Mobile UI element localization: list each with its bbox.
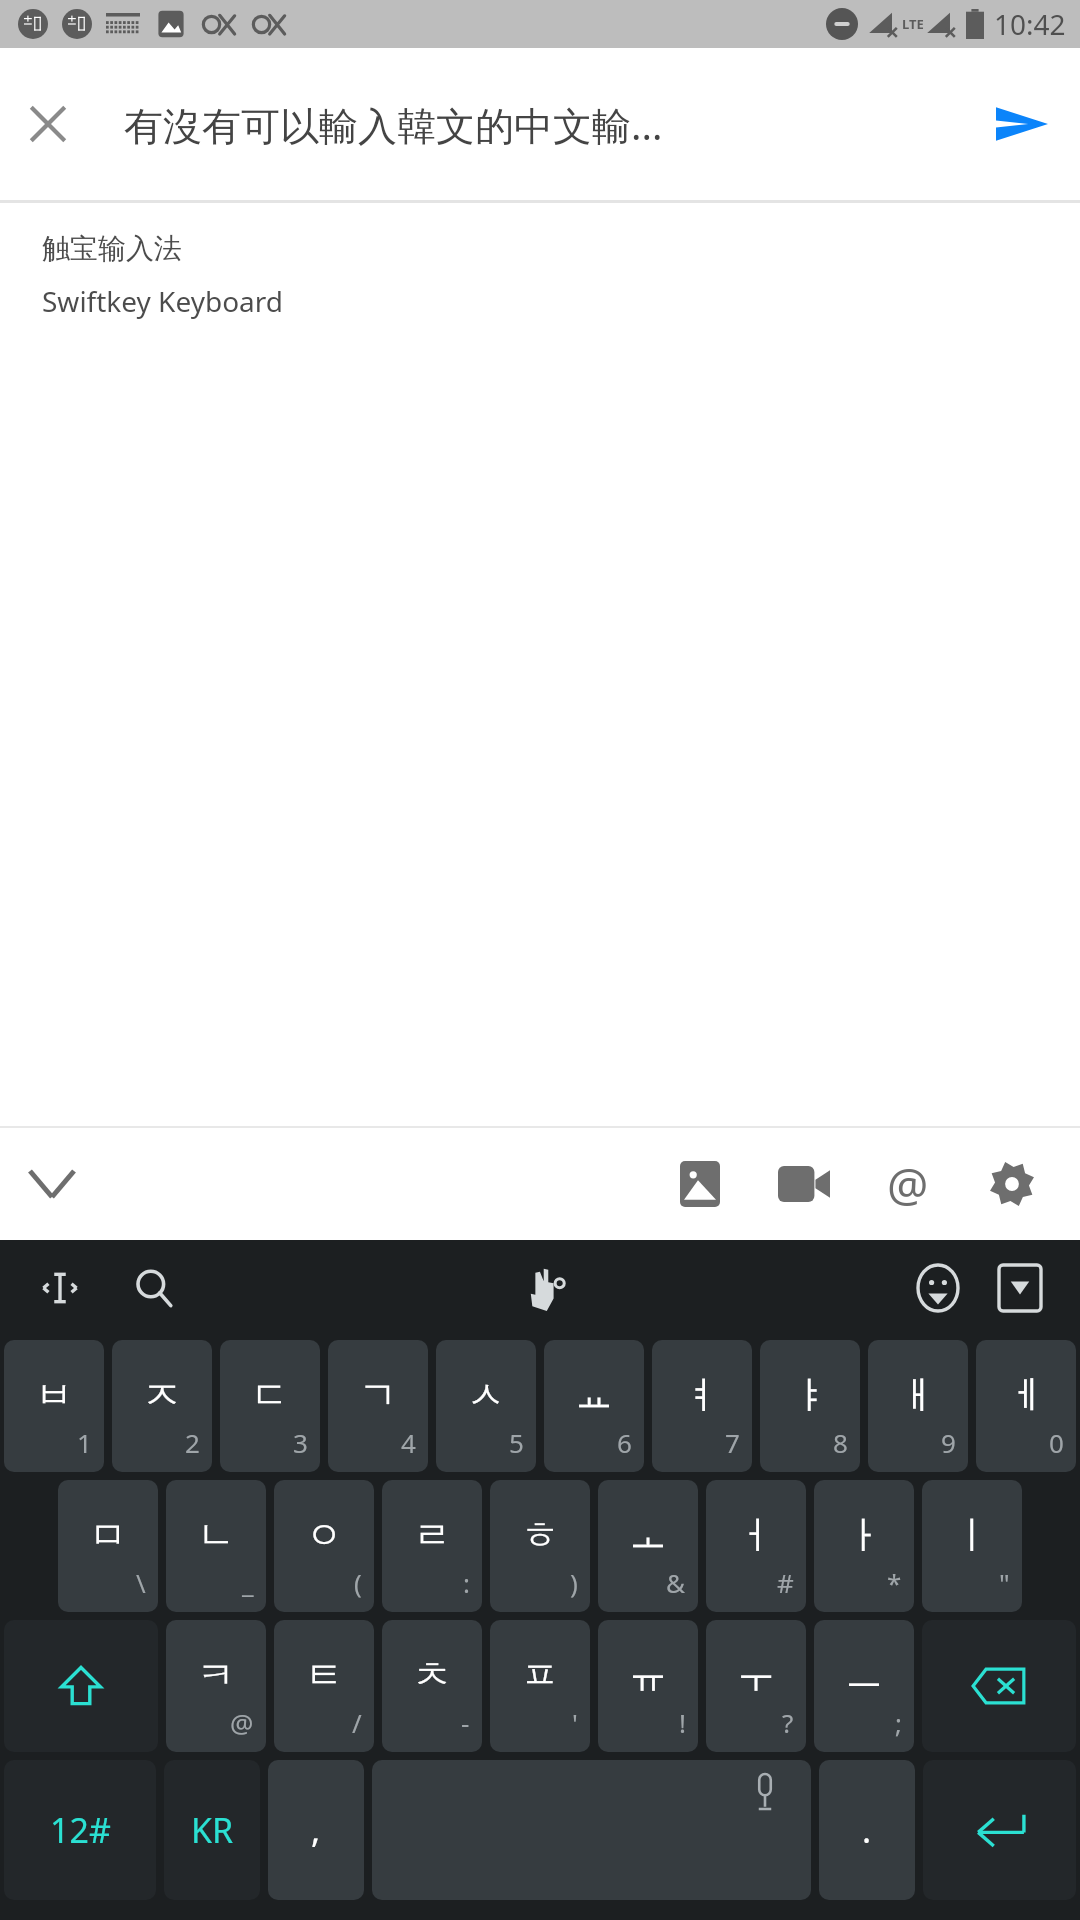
button[interactable]: ㅍ xyxy=(490,1620,590,1752)
staticText: . xyxy=(862,1807,872,1853)
staticText: : xyxy=(463,1565,470,1600)
staticText: ) xyxy=(570,1565,578,1600)
staticText: ; xyxy=(895,1705,902,1740)
button[interactable]: Settings xyxy=(960,1132,1064,1236)
staticText: @ xyxy=(230,1705,254,1740)
button[interactable]: Emoji xyxy=(900,1250,976,1326)
button[interactable]: Enter xyxy=(923,1760,1076,1900)
staticText: _ xyxy=(242,1565,254,1600)
staticText: ㅁ xyxy=(89,1511,127,1559)
button[interactable]: 12# xyxy=(4,1760,156,1900)
button[interactable]: Close xyxy=(0,76,96,172)
button[interactable]: . xyxy=(819,1760,915,1900)
staticText: @ xyxy=(887,1153,929,1216)
staticText: 1 xyxy=(77,1425,92,1460)
button[interactable]: Insert video xyxy=(752,1132,856,1236)
button[interactable]: ㅇ xyxy=(274,1480,374,1612)
staticText: 6 xyxy=(617,1425,632,1460)
staticText: \ xyxy=(136,1565,146,1600)
button[interactable]: Send xyxy=(974,76,1070,172)
button[interactable]: Collapse xyxy=(0,1132,104,1236)
staticText: ㅡ xyxy=(845,1651,883,1699)
button[interactable]: ㄷ xyxy=(220,1340,320,1472)
staticText: 触宝输入法 xyxy=(42,231,182,266)
button[interactable]: ㅠ xyxy=(598,1620,698,1752)
staticText: " xyxy=(999,1565,1010,1600)
staticText: / xyxy=(352,1705,362,1740)
staticText: ㅛ xyxy=(575,1371,613,1419)
staticText: * xyxy=(887,1565,902,1600)
staticText: Swiftkey Keyboard xyxy=(42,282,284,320)
staticText: ㅠ xyxy=(629,1651,667,1699)
button[interactable]: ㅜ xyxy=(706,1620,806,1752)
button[interactable]: Mention xyxy=(856,1132,960,1236)
button[interactable]: ㅗ xyxy=(598,1480,698,1612)
button[interactable]: ㄱ xyxy=(328,1340,428,1472)
staticText: ㅇ xyxy=(305,1511,343,1559)
staticText: 12# xyxy=(50,1807,111,1853)
button[interactable]: , xyxy=(268,1760,364,1900)
staticText: ㄴ xyxy=(197,1511,235,1559)
staticText: ㅅ xyxy=(467,1371,505,1419)
staticText: - xyxy=(461,1705,470,1740)
staticText: , xyxy=(311,1807,321,1853)
staticText: ㅣ xyxy=(953,1511,991,1559)
button[interactable]: Backspace xyxy=(922,1620,1076,1752)
button[interactable]: Search xyxy=(116,1250,192,1326)
staticText: LTE xyxy=(902,15,924,33)
staticText: ㅓ xyxy=(737,1511,775,1559)
button[interactable]: Space xyxy=(372,1760,811,1900)
button[interactable]: ㄴ xyxy=(166,1480,266,1612)
staticText: KR xyxy=(191,1807,234,1853)
staticText: ( xyxy=(354,1565,362,1600)
button[interactable]: Handwriting xyxy=(508,1250,584,1326)
staticText: ㄹ xyxy=(413,1511,451,1559)
staticText: 5 xyxy=(509,1425,524,1460)
button[interactable]: ㅔ xyxy=(976,1340,1076,1472)
button[interactable]: ㅊ xyxy=(382,1620,482,1752)
staticText: 3 xyxy=(293,1425,308,1460)
staticText: ㄱ xyxy=(359,1371,397,1419)
staticText: 9 xyxy=(941,1425,956,1460)
staticText: ㅌ xyxy=(305,1651,343,1699)
button[interactable]: ㅐ xyxy=(868,1340,968,1472)
staticText: 0 xyxy=(1049,1425,1064,1460)
staticText: ㄷ xyxy=(251,1371,289,1419)
staticText: ㅕ xyxy=(683,1371,721,1419)
staticText: ㅜ xyxy=(737,1651,775,1699)
staticText: 4 xyxy=(401,1425,416,1460)
staticText: ㅂ xyxy=(35,1371,73,1419)
button[interactable]: ㅕ xyxy=(652,1340,752,1472)
staticText: ㅊ xyxy=(413,1651,451,1699)
button[interactable]: ㅁ xyxy=(58,1480,158,1612)
button[interactable]: ㅡ xyxy=(814,1620,914,1752)
staticText: # xyxy=(777,1565,794,1600)
button[interactable]: Cursor control xyxy=(22,1250,98,1326)
button[interactable]: ㅂ xyxy=(4,1340,104,1472)
button[interactable]: ㄹ xyxy=(382,1480,482,1612)
button[interactable]: ㅛ xyxy=(544,1340,644,1472)
staticText: 8 xyxy=(833,1425,848,1460)
button[interactable]: ㅈ xyxy=(112,1340,212,1472)
button[interactable]: ㅋ xyxy=(166,1620,266,1752)
button[interactable]: ㅑ xyxy=(760,1340,860,1472)
button[interactable]: KR xyxy=(164,1760,260,1900)
staticText: ㅑ xyxy=(791,1371,829,1419)
staticText: ㅏ xyxy=(845,1511,883,1559)
staticText: ' xyxy=(572,1705,578,1740)
button[interactable]: ㅅ xyxy=(436,1340,536,1472)
staticText: ! xyxy=(679,1705,686,1740)
button[interactable]: ㅣ xyxy=(922,1480,1022,1612)
staticText: ㅗ xyxy=(629,1511,667,1559)
staticText: ㅍ xyxy=(521,1651,559,1699)
button[interactable]: Insert image xyxy=(648,1132,752,1236)
button[interactable]: Shift xyxy=(4,1620,158,1752)
button[interactable]: ㅓ xyxy=(706,1480,806,1612)
staticText: 有沒有可以輸入韓文的中文輸... xyxy=(124,98,974,151)
button[interactable]: ㅎ xyxy=(490,1480,590,1612)
staticText: ㅐ xyxy=(899,1371,937,1419)
staticText: 2 xyxy=(185,1425,200,1460)
button[interactable]: ㅌ xyxy=(274,1620,374,1752)
button[interactable]: ㅏ xyxy=(814,1480,914,1612)
button[interactable]: Hide keyboard xyxy=(982,1250,1058,1326)
